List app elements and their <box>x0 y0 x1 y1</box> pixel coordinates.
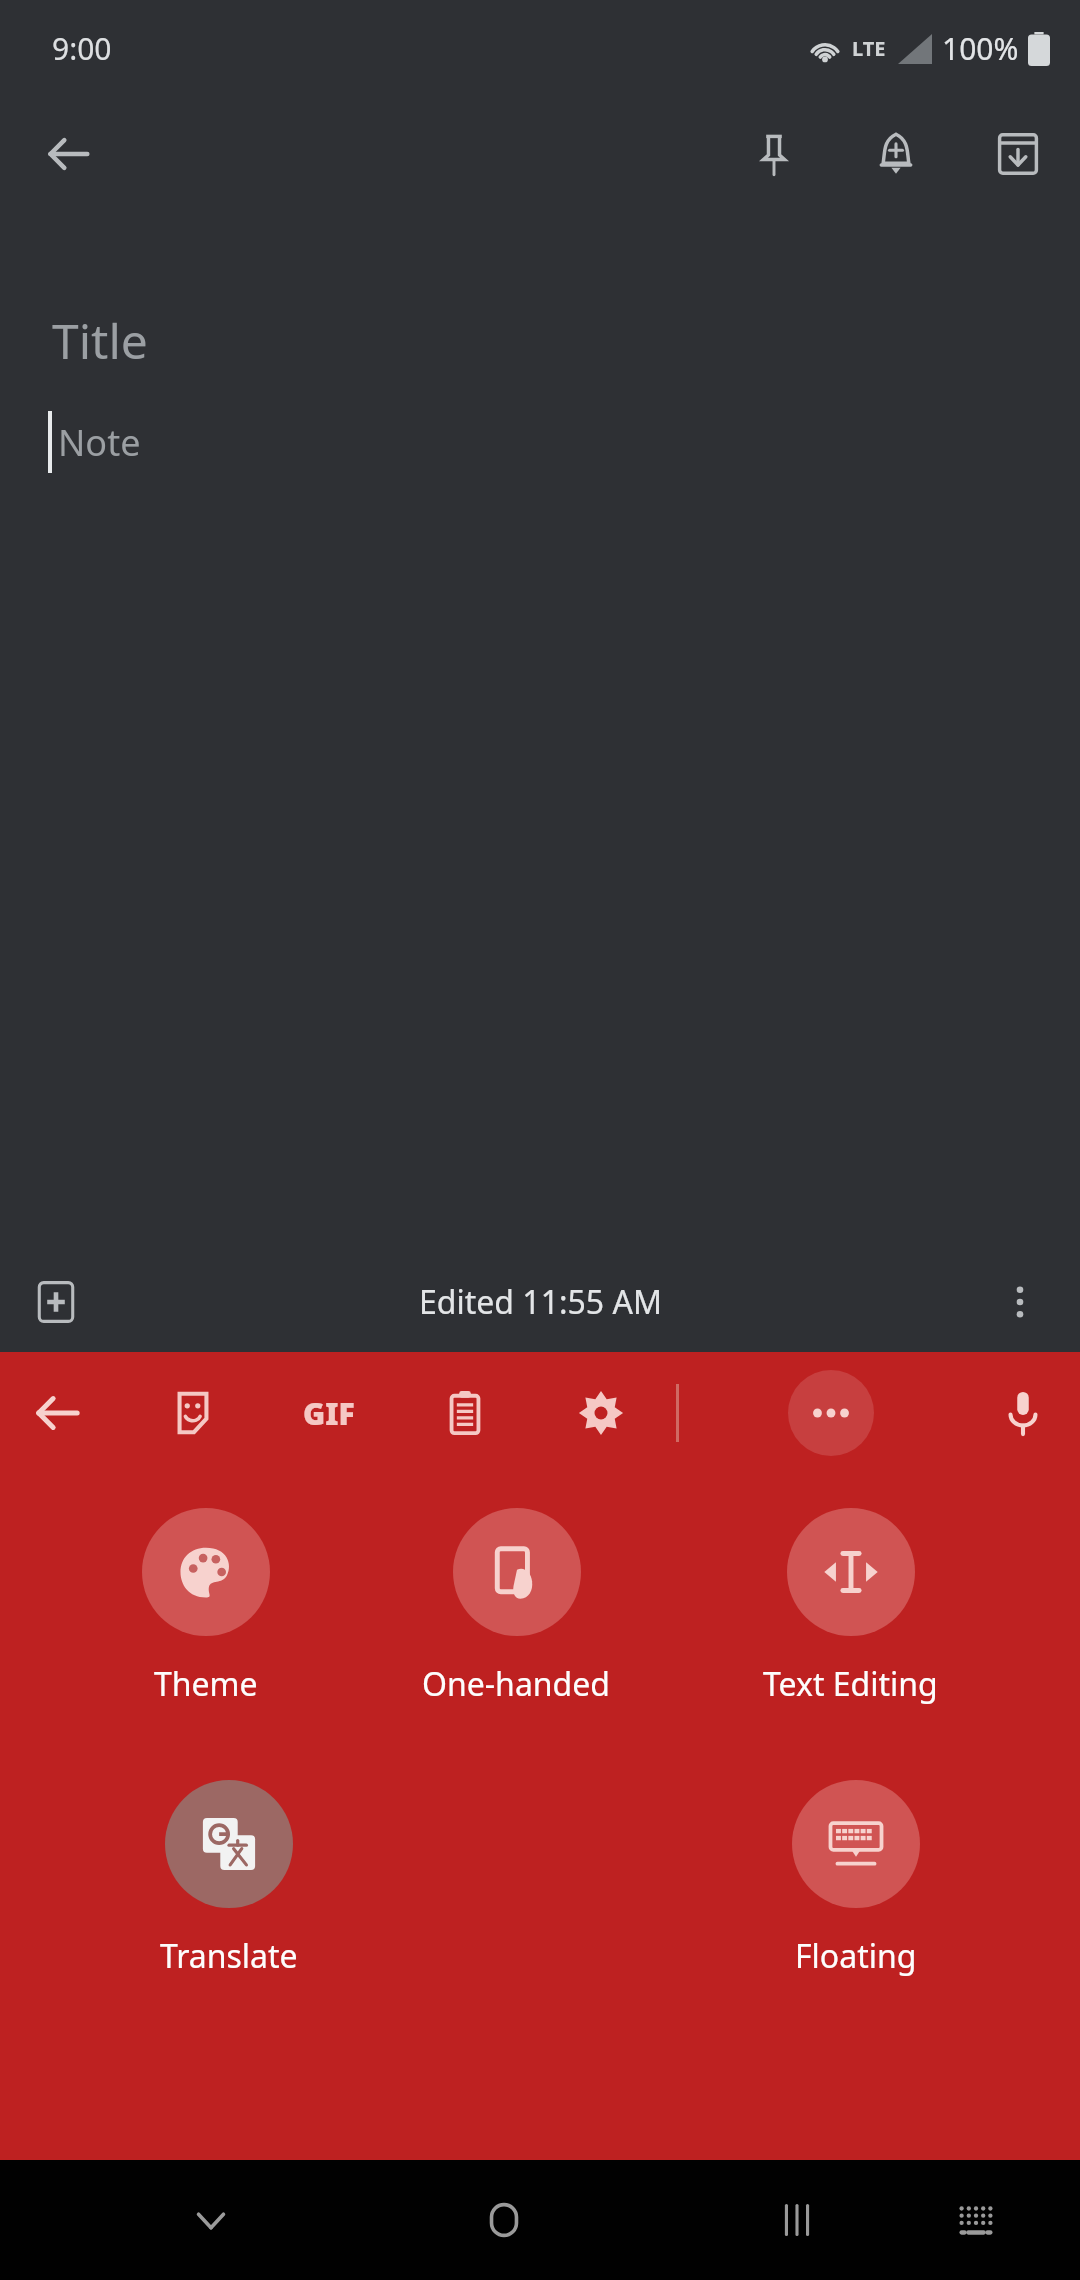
button[interactable]: Hide keyboard <box>163 2172 259 2268</box>
button[interactable]: Recents <box>749 2172 845 2268</box>
button[interactable]: Stickers <box>154 1374 232 1452</box>
button[interactable]: Settings <box>562 1374 640 1452</box>
staticText: Translate <box>160 1934 298 1978</box>
staticText: Edited 11:55 AM <box>419 1280 662 1324</box>
button[interactable]: Voice input <box>984 1374 1062 1452</box>
button[interactable]: Back <box>26 112 110 196</box>
staticText: LTE <box>852 35 886 62</box>
staticText: Title <box>52 308 148 373</box>
button[interactable]: Switch keyboard <box>928 2172 1024 2268</box>
button[interactable]: Home <box>456 2172 552 2268</box>
staticText: 9:00 <box>52 28 112 69</box>
staticText: One-handed <box>422 1662 611 1706</box>
button[interactable]: More <box>788 1370 874 1456</box>
button[interactable]: Theme <box>132 1508 280 1706</box>
button[interactable]: More options <box>982 1264 1058 1340</box>
button[interactable]: Text Editing <box>753 1508 948 1706</box>
button[interactable]: Clipboard <box>426 1374 504 1452</box>
staticText: Note <box>58 418 141 467</box>
button[interactable]: Translate <box>150 1780 308 1978</box>
button[interactable]: One-handed <box>412 1508 621 1706</box>
staticText: GIF <box>303 1393 355 1434</box>
button[interactable]: Archive <box>978 114 1058 194</box>
button[interactable]: Title <box>0 212 1080 1252</box>
button[interactable]: Pin <box>734 114 814 194</box>
button[interactable]: GIF <box>290 1374 368 1452</box>
staticText: Text Editing <box>763 1662 938 1706</box>
button[interactable]: Add <box>18 1264 94 1340</box>
staticText: Theme <box>154 1662 258 1706</box>
button[interactable]: Back <box>18 1374 96 1452</box>
staticText: Floating <box>795 1934 917 1978</box>
button[interactable]: Floating <box>782 1780 930 1978</box>
staticText: 100% <box>942 28 1019 69</box>
button[interactable]: Reminder <box>856 114 936 194</box>
